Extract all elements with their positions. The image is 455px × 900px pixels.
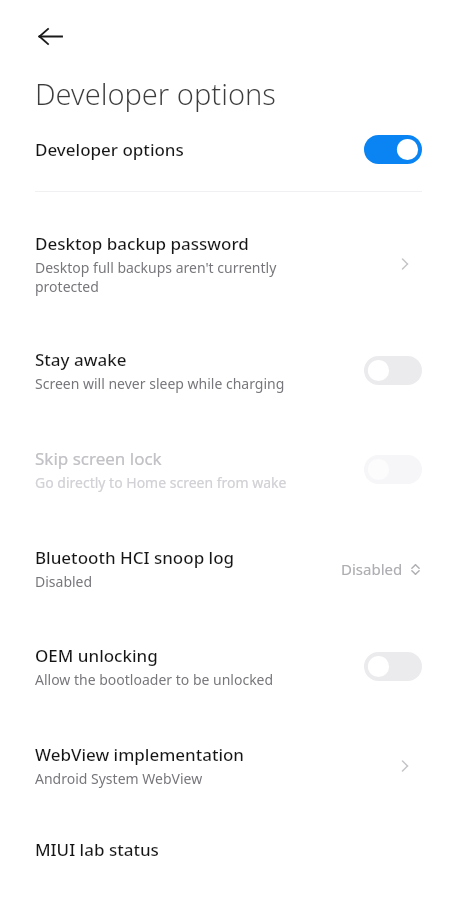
button[interactable]: Bluetooth HCI snoop log xyxy=(0,546,455,591)
button[interactable]: Stay awake xyxy=(0,348,455,393)
button[interactable]: Switch off xyxy=(364,356,422,385)
staticText: Desktop full backups aren't currently pr… xyxy=(35,258,277,296)
button[interactable]: Switch off xyxy=(364,652,422,681)
button[interactable]: OEM unlocking xyxy=(0,644,455,689)
staticText: Developer options xyxy=(35,74,276,113)
staticText: OEM unlocking xyxy=(35,644,158,667)
button[interactable]: WebView implementation xyxy=(0,743,455,788)
staticText: Skip screen lock xyxy=(35,447,162,470)
staticText: WebView implementation xyxy=(35,743,245,766)
button[interactable]: Desktop backup password xyxy=(0,232,455,296)
staticText: Developer options xyxy=(35,138,364,161)
button[interactable]: Open xyxy=(388,749,422,783)
staticText: Android System WebView xyxy=(35,769,203,788)
button[interactable]: Back xyxy=(26,12,74,60)
staticText: Go directly to Home screen from wake xyxy=(35,473,287,492)
button[interactable]: Open xyxy=(388,247,422,281)
button[interactable]: MIUI lab status xyxy=(0,838,455,861)
button[interactable]: Switch off xyxy=(364,455,422,484)
staticText: Screen will never sleep while charging xyxy=(35,374,285,393)
staticText: MIUI lab status xyxy=(35,838,159,861)
staticText: Allow the bootloader to be unlocked xyxy=(35,670,274,689)
staticText: Bluetooth HCI snoop log xyxy=(35,546,235,569)
staticText: Disabled xyxy=(35,572,93,591)
button[interactable]: Skip screen lock xyxy=(0,447,455,492)
staticText: Disabled xyxy=(341,559,403,579)
staticText: Stay awake xyxy=(35,348,127,371)
button[interactable]: Disabled xyxy=(341,553,422,585)
button[interactable]: Developer options xyxy=(0,135,455,164)
staticText: Desktop backup password xyxy=(35,232,249,255)
button[interactable]: Switch on xyxy=(364,135,422,164)
